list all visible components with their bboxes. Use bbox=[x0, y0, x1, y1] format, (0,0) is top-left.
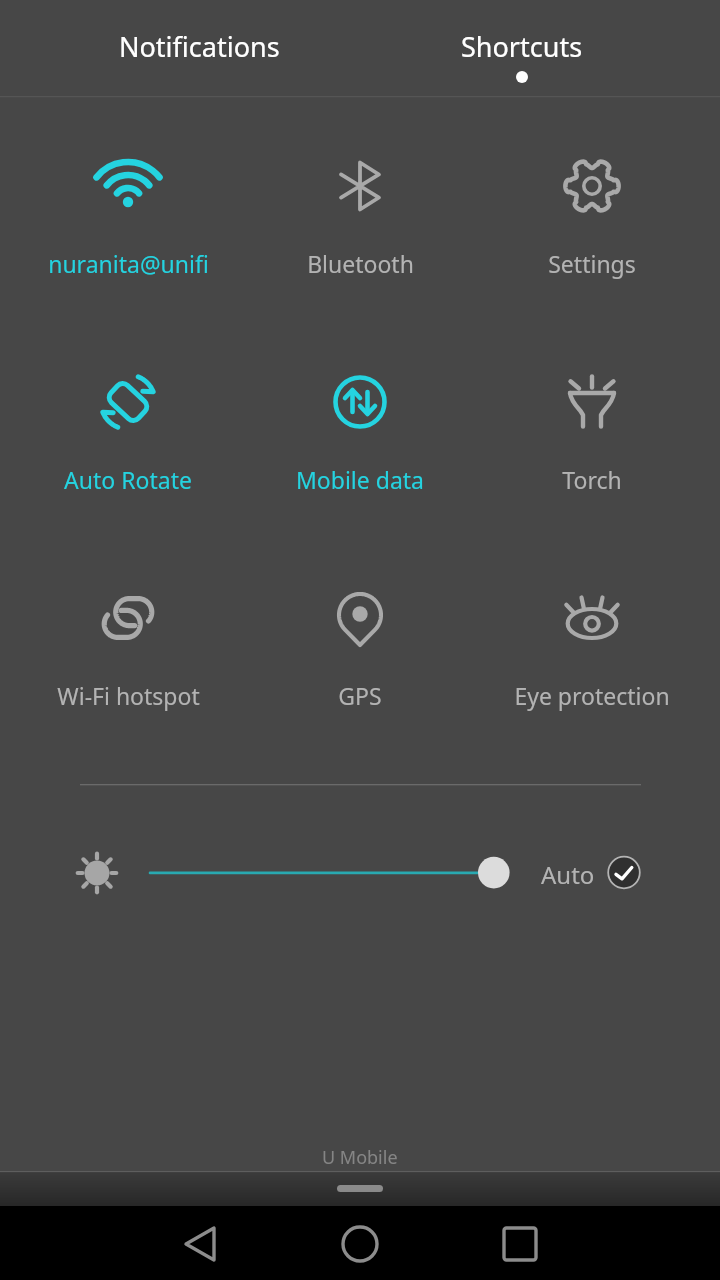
button[interactable]: Shortcuts bbox=[382, 0, 662, 96]
button[interactable]: Auto bbox=[541, 845, 647, 901]
button[interactable]: Notifications bbox=[59, 0, 339, 96]
button[interactable]: Settings bbox=[476, 164, 708, 314]
button[interactable]: Eye protection bbox=[476, 596, 708, 746]
button[interactable]: Home bbox=[320, 1206, 400, 1280]
staticText: Settings bbox=[548, 248, 636, 279]
button[interactable]: Mobile data bbox=[244, 380, 476, 530]
staticText: Auto bbox=[541, 858, 595, 891]
button[interactable]: Bluetooth bbox=[244, 164, 476, 314]
staticText: Wi-Fi hotspot bbox=[57, 680, 200, 711]
button[interactable]: Auto Rotate bbox=[12, 380, 244, 530]
button[interactable]: Torch bbox=[476, 380, 708, 530]
staticText: Eye protection bbox=[514, 680, 670, 711]
staticText: Bluetooth bbox=[307, 248, 414, 279]
button[interactable]: Back bbox=[160, 1206, 240, 1280]
staticText: Torch bbox=[562, 464, 622, 495]
staticText: nuranita@unifi bbox=[48, 248, 209, 279]
staticText: GPS bbox=[338, 680, 382, 711]
staticText: U Mobile bbox=[322, 1145, 398, 1170]
button[interactable]: Brightness bbox=[67, 843, 127, 903]
staticText: Shortcuts bbox=[461, 28, 583, 65]
staticText: Mobile data bbox=[296, 464, 424, 495]
button[interactable]: GPS bbox=[244, 596, 476, 746]
staticText: Notifications bbox=[119, 28, 280, 65]
button[interactable]: Wi-Fi hotspot bbox=[12, 596, 244, 746]
button[interactable]: nuranita@unifi bbox=[12, 164, 244, 314]
button[interactable]: Recents bbox=[480, 1206, 560, 1280]
staticText: Auto Rotate bbox=[64, 464, 192, 495]
